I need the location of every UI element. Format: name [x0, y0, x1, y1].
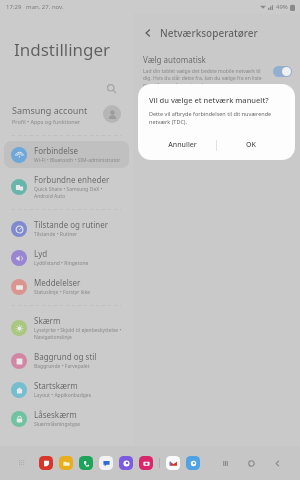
staticText: Lyd [34, 248, 48, 259]
button[interactable]: note [39, 456, 53, 470]
staticText: 17:29 man. 27. nov. [6, 3, 64, 11]
staticText: Indstillinger [14, 38, 111, 61]
staticText: Skærmlåsningstype [34, 421, 81, 428]
button[interactable]: Vælg automatisk [133, 52, 300, 89]
button[interactable]: Start [238, 451, 264, 475]
button[interactable]: Apps [16, 457, 28, 469]
button[interactable]: Meddelelser [4, 273, 129, 300]
button[interactable]: browser [119, 456, 133, 470]
button[interactable]: Lyd [4, 244, 129, 271]
staticText: Låseskærm [34, 409, 77, 420]
staticText: Annuller [168, 140, 197, 150]
staticText: Skærm [34, 315, 61, 326]
button[interactable]: Låseskærm [4, 405, 129, 432]
staticText: Forbundne enheder [34, 174, 110, 185]
staticText: Wi-Fi • Bluetooth • SIM-administrator [34, 157, 121, 164]
button[interactable]: files [59, 456, 73, 470]
button[interactable]: camera [139, 456, 153, 470]
button[interactable]: Gmail [166, 456, 180, 470]
staticText: Netværksoperatører [160, 26, 258, 40]
button[interactable]: Startskærm [4, 376, 129, 403]
staticText: OK [246, 140, 256, 150]
button[interactable]: Tilbage [264, 451, 290, 475]
staticText: Lysstyrke • Skjold til øjenbeskyttelse •… [34, 327, 122, 341]
staticText: 49% [276, 3, 288, 11]
staticText: Tilstande og rutiner [34, 219, 109, 230]
staticText: Dette vil afbryde forbindelsen til dit n… [149, 110, 284, 126]
button[interactable]: OK [217, 135, 284, 155]
button[interactable]: Annuller [149, 135, 216, 155]
staticText: Tilstande • Rutiner [34, 231, 78, 238]
button[interactable]: Forbundne enheder [4, 170, 129, 204]
button[interactable]: Samsung account [0, 97, 133, 131]
staticText: Vælg automatisk [143, 54, 206, 65]
button[interactable]: Baggrund og stil [4, 347, 129, 374]
staticText: Quick Share • Samsung DeX • Android Auto [34, 186, 122, 200]
staticText: Samsung account [12, 104, 88, 116]
staticText: Layout • Appikonbadges [34, 392, 92, 399]
staticText: Startskærm [34, 380, 78, 391]
button[interactable]: Vælg automatisk til/fra [273, 66, 292, 77]
staticText: Baggrunde • Farvepalet [34, 363, 90, 370]
button[interactable]: phone [79, 456, 93, 470]
staticText: Vil du vælge et netværk manuelt? [149, 95, 269, 105]
staticText: Lydtilstand • Ringetone [34, 260, 89, 267]
button[interactable]: Tilstande og rutiner [4, 215, 129, 242]
staticText: Forbindelse [34, 145, 79, 156]
staticText: Baggrund og stil [34, 351, 97, 362]
button[interactable]: Tilbage [141, 26, 155, 40]
button[interactable]: Drev [186, 456, 200, 470]
button[interactable]: msg [99, 456, 113, 470]
button[interactable]: Seneste [212, 451, 238, 475]
staticText: Statuslinje • Forstyr ikke [34, 289, 91, 296]
staticText: Meddelelser [34, 277, 81, 288]
button[interactable]: Skærm [4, 311, 129, 345]
button[interactable]: Forbindelse [4, 141, 129, 168]
staticText: Profil • Apps og funktioner [12, 118, 81, 125]
staticText: Lad din tablet vælge det bedste mobile n… [143, 68, 267, 89]
button[interactable]: Søg [103, 80, 119, 96]
